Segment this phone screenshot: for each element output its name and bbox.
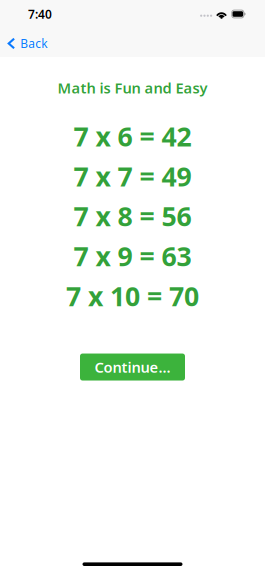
staticText: 7 x 6 = 42 xyxy=(73,118,191,154)
button[interactable]: Continue... xyxy=(80,353,185,380)
staticText: 7 x 7 = 49 xyxy=(73,158,191,194)
staticText: 7 x 8 = 56 xyxy=(73,198,191,234)
staticText: Back xyxy=(20,35,47,51)
staticText: Continue... xyxy=(94,357,170,377)
staticText: 7:40 xyxy=(28,6,52,22)
button[interactable]: Back xyxy=(0,28,55,54)
staticText: 7 x 10 = 70 xyxy=(66,278,199,313)
staticText: Math is Fun and Easy xyxy=(57,78,207,97)
staticText: 7 x 9 = 63 xyxy=(73,238,191,274)
